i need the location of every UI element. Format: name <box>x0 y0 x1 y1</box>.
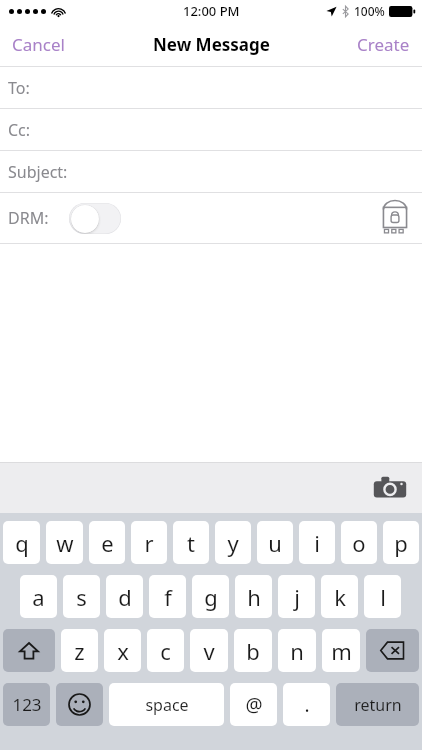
button[interactable]: u <box>257 521 293 564</box>
button[interactable]: 123 <box>3 683 50 726</box>
button[interactable]: s <box>63 575 100 618</box>
staticText: p <box>394 528 408 558</box>
button[interactable]: f <box>149 575 186 618</box>
button[interactable]: Create <box>345 25 422 64</box>
staticText: Cancel <box>12 33 65 56</box>
staticText: . <box>304 692 310 718</box>
button[interactable]: c <box>147 629 184 672</box>
staticText: w <box>56 528 74 558</box>
button[interactable]: a <box>20 575 57 618</box>
staticText: i <box>314 528 320 558</box>
button[interactable]: k <box>321 575 358 618</box>
button[interactable]: d <box>106 575 143 618</box>
staticText: g <box>204 582 218 612</box>
button[interactable]: q <box>3 521 40 564</box>
button[interactable]: g <box>192 575 229 618</box>
staticText: @ <box>245 692 263 718</box>
staticText: o <box>352 528 366 558</box>
staticText: DRM: <box>8 207 49 229</box>
button[interactable]: v <box>190 629 228 672</box>
staticText: l <box>380 582 386 612</box>
staticText: 12:00 PM <box>183 2 240 20</box>
staticText: h <box>247 582 261 612</box>
button[interactable]: To: <box>0 67 422 108</box>
staticText: j <box>294 582 300 612</box>
button[interactable]: l <box>364 575 401 618</box>
staticText: Subject: <box>8 161 68 183</box>
staticText: t <box>187 528 195 558</box>
button[interactable]: space <box>109 683 224 726</box>
button[interactable]: j <box>278 575 315 618</box>
staticText: New Message <box>153 33 270 56</box>
button[interactable]: x <box>104 629 141 672</box>
button[interactable]: m <box>322 629 360 672</box>
staticText: Create <box>357 33 410 56</box>
button[interactable]: Camera <box>372 474 408 502</box>
staticText: 123 <box>12 693 42 716</box>
staticText: space <box>145 694 189 716</box>
staticText: u <box>268 528 282 558</box>
button[interactable]: h <box>235 575 272 618</box>
button[interactable]: Subject: <box>0 151 422 192</box>
staticText: v <box>203 636 215 666</box>
staticText: c <box>160 636 171 666</box>
staticText: x <box>117 636 129 666</box>
staticText: 100% <box>354 3 385 19</box>
staticText: m <box>331 636 352 666</box>
button[interactable]: Delete <box>366 629 419 672</box>
button[interactable]: t <box>173 521 209 564</box>
staticText: Cc: <box>8 119 31 141</box>
button[interactable]: return <box>336 683 419 726</box>
button[interactable]: n <box>278 629 316 672</box>
button[interactable]: w <box>46 521 83 564</box>
staticText: z <box>74 636 85 666</box>
staticText: d <box>118 582 132 612</box>
button[interactable]: @ <box>230 683 277 726</box>
staticText: y <box>227 528 239 558</box>
staticText: f <box>164 582 172 612</box>
staticText: s <box>76 582 87 612</box>
button[interactable]: Cancel <box>0 25 77 64</box>
staticText: a <box>32 582 45 612</box>
button[interactable]: i <box>299 521 335 564</box>
staticText: k <box>334 582 346 612</box>
staticText: b <box>246 636 260 666</box>
button[interactable]: Cc: <box>0 109 422 150</box>
button[interactable]: y <box>215 521 251 564</box>
button[interactable]: Shift <box>3 629 55 672</box>
button[interactable]: o <box>341 521 377 564</box>
button[interactable]: DRM toggle <box>69 203 121 234</box>
button[interactable]: e <box>89 521 125 564</box>
staticText: q <box>15 528 29 558</box>
staticText: e <box>101 528 114 558</box>
staticText: return <box>354 694 402 716</box>
button[interactable]: b <box>234 629 272 672</box>
button[interactable]: Emoji <box>56 683 103 726</box>
staticText: n <box>290 636 304 666</box>
staticText: r <box>144 528 154 558</box>
button[interactable]: z <box>61 629 98 672</box>
button[interactable]: DRM protected <box>378 199 412 237</box>
button[interactable]: r <box>131 521 167 564</box>
button[interactable]: . <box>283 683 330 726</box>
staticText: To: <box>8 77 30 99</box>
button[interactable]: p <box>383 521 419 564</box>
